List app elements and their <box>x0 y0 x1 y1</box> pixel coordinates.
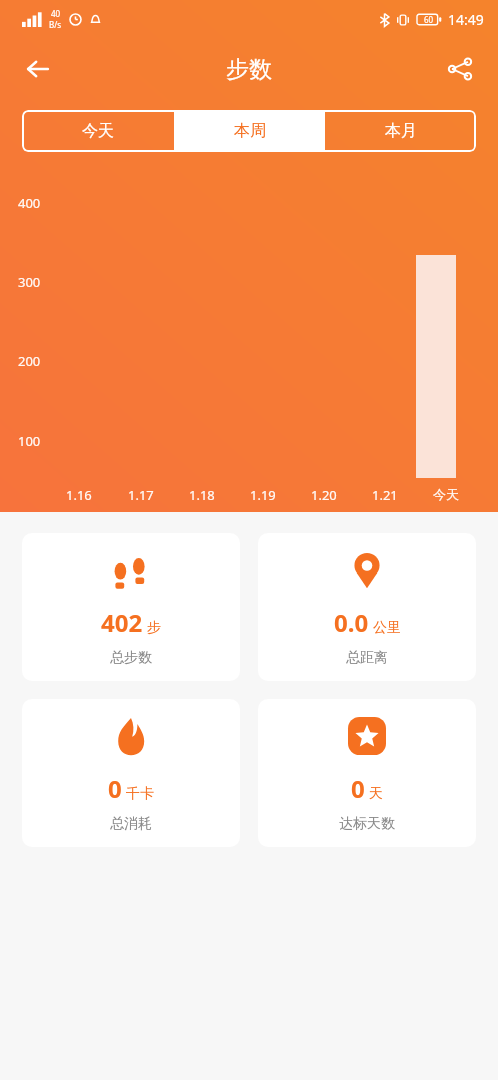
staticText: 天 <box>369 785 383 803</box>
staticText: 0.0 <box>334 606 369 639</box>
staticText: 1.17 <box>128 486 154 504</box>
staticText: 1.21 <box>372 486 398 504</box>
staticText: 步数 <box>226 55 272 84</box>
button[interactable]: 今天 <box>22 110 174 152</box>
staticText: 0 <box>108 772 122 805</box>
staticText: 本周 <box>234 121 266 141</box>
staticText: 本月 <box>385 121 417 141</box>
staticText: 14:49 <box>448 10 484 29</box>
button[interactable]: Back <box>16 47 60 91</box>
staticText: B/s <box>49 19 62 30</box>
staticText: 402 <box>101 606 143 639</box>
staticText: 总消耗 <box>110 815 152 833</box>
button[interactable]: 402 <box>22 533 240 681</box>
staticText: 1.18 <box>189 486 215 504</box>
staticText: 公里 <box>373 619 401 637</box>
staticText: 今天 <box>433 486 459 502</box>
staticText: 千卡 <box>126 785 154 803</box>
button[interactable]: 0.0 <box>258 533 476 681</box>
staticText: 200 <box>18 352 41 370</box>
staticText: 今天 <box>82 121 114 141</box>
staticText: 0 <box>351 772 365 805</box>
staticText: 1.16 <box>66 486 92 504</box>
staticText: 60 <box>424 14 434 25</box>
button[interactable]: 0 <box>22 699 240 847</box>
staticText: 1.20 <box>311 486 337 504</box>
button[interactable]: 0 <box>258 699 476 847</box>
staticText: 总步数 <box>110 649 152 667</box>
staticText: 100 <box>18 432 41 450</box>
staticText: 400 <box>18 194 41 212</box>
button[interactable]: Share <box>438 47 482 91</box>
staticText: 300 <box>18 273 41 291</box>
staticText: 达标天数 <box>339 815 395 833</box>
staticText: 1.19 <box>250 486 276 504</box>
staticText: 总距离 <box>346 649 388 667</box>
button[interactable]: 本月 <box>325 110 476 152</box>
button[interactable]: 本周 <box>174 110 325 152</box>
staticText: 40 <box>51 8 61 19</box>
staticText: 步 <box>147 619 161 637</box>
